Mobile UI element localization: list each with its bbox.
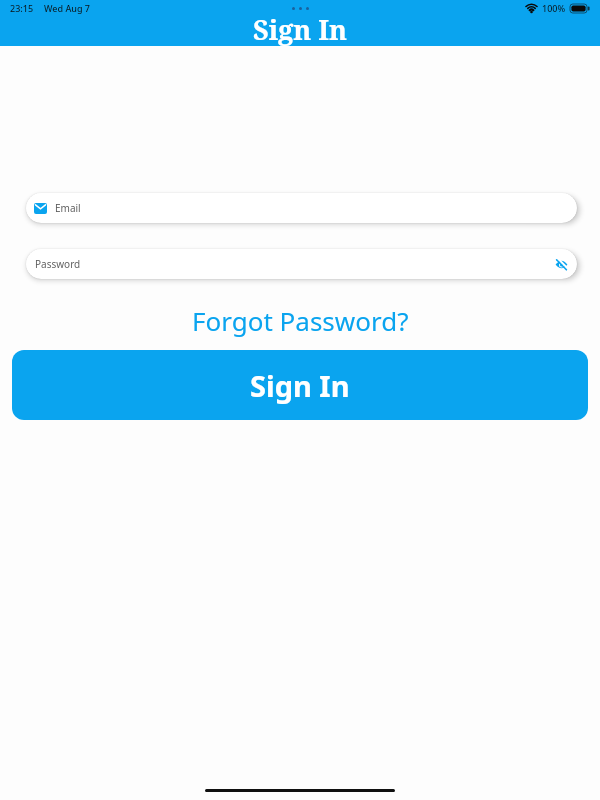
button[interactable]: [555, 258, 568, 271]
button[interactable]: Email: [26, 193, 577, 223]
staticText: 100%: [542, 2, 566, 14]
staticText: Sign In: [250, 366, 350, 405]
staticText: 23:15: [10, 2, 34, 14]
button[interactable]: Forgot Password?: [192, 303, 409, 338]
button[interactable]: Password: [26, 249, 577, 279]
staticText: Wed Aug 7: [44, 2, 90, 14]
button[interactable]: Sign In: [12, 350, 588, 420]
staticText: Sign In: [253, 11, 348, 48]
staticText: Email: [55, 201, 81, 215]
staticText: Password: [35, 257, 81, 271]
